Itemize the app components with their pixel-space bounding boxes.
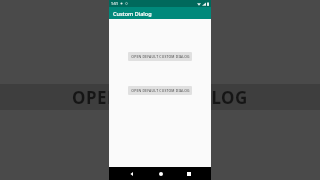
staticText: 1:51 <box>111 1 118 6</box>
staticText: OPEN DEFAULT CUSTOM DIALOG <box>131 54 190 59</box>
staticText: IALOG <box>192 86 248 109</box>
staticText: Custom Dialog <box>113 10 152 17</box>
button[interactable]: Recent apps <box>183 168 194 179</box>
button[interactable]: OPEN DEFAULT CUSTOM DIALOG <box>128 86 192 95</box>
button[interactable]: Back <box>126 168 137 179</box>
staticText: OPEN DEFAULT CUSTOM DIALOG <box>131 88 190 93</box>
button[interactable]: Home <box>155 168 166 179</box>
button[interactable]: OPEN DEFAULT CUSTOM DIALOG <box>128 52 192 61</box>
staticText: OPEN <box>72 86 122 109</box>
